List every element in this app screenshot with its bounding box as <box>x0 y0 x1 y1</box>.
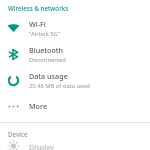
button[interactable]: Bluetooth <box>0 41 150 67</box>
button[interactable]: Wi-Fi <box>0 15 150 41</box>
staticText: Device <box>8 130 28 138</box>
staticText: Disconnected <box>29 56 66 64</box>
button[interactable]: Display <box>0 142 150 150</box>
staticText: "Airbok 5G" <box>29 30 61 38</box>
staticText: Wi-Fi <box>29 19 46 29</box>
staticText: Data usage <box>29 71 68 81</box>
staticText: More <box>29 101 48 111</box>
staticText: Bluetooth <box>29 45 64 55</box>
button[interactable]: Data usage <box>0 67 150 93</box>
other: More wireless settings <box>6 99 21 114</box>
other: Bluetooth <box>6 47 21 62</box>
other: Wi-Fi <box>6 21 21 36</box>
staticText: 20.46 MB of data used <box>29 82 90 90</box>
other: Display <box>6 142 21 150</box>
other: Data usage <box>6 73 21 88</box>
staticText: Wireless & networks <box>8 4 69 12</box>
staticText: Display <box>29 142 54 150</box>
button[interactable]: More wireless settings <box>0 93 150 119</box>
